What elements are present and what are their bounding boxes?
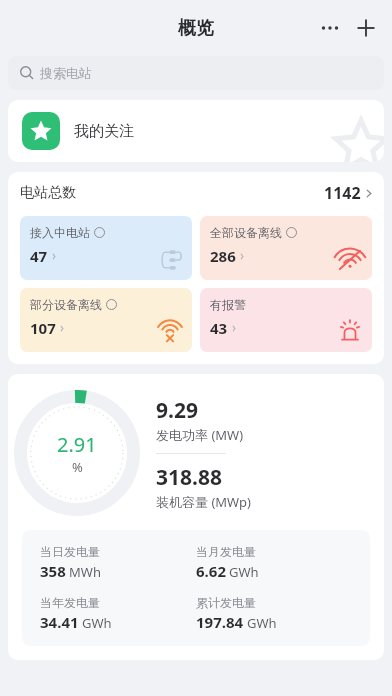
staticText: 发电功率 (MW) [156,426,244,444]
button[interactable]: More options [312,10,348,46]
staticText: % [72,458,83,476]
button[interactable]: 搜索电站 [8,56,384,90]
button[interactable]: 全部设备离线 [200,216,372,280]
button[interactable]: 我的关注 [8,100,384,162]
staticText: 有报警 [210,297,246,312]
staticText: 107 [30,318,56,338]
staticText: 43 [210,318,228,338]
button[interactable]: Add [348,10,384,46]
staticText: 2.91 [57,431,97,458]
staticText: 搜索电站 [40,65,92,81]
button[interactable]: 部分设备离线 [20,288,192,352]
staticText: 6.62 [196,561,226,581]
staticText: GWh [82,614,112,632]
staticText: 9.29 [156,396,198,425]
button[interactable]: 电站总数 [20,172,372,214]
staticText: 34.41 [40,612,79,632]
staticText: 全部设备离线 [210,225,282,240]
staticText: 318.88 [156,463,222,492]
staticText: 47 [30,246,48,266]
staticText: 286 [210,246,236,266]
staticText: 197.84 [196,612,244,632]
staticText: 358 [40,561,66,581]
staticText: 部分设备离线 [30,297,102,312]
staticText: GWh [247,614,277,632]
button[interactable]: 接入中电站 [20,216,192,280]
staticText: 累计发电量 [196,595,256,610]
staticText: MWh [69,563,101,581]
staticText: GWh [229,563,259,581]
staticText: 概览 [178,17,214,40]
staticText: 1142 [324,182,361,204]
staticText: 装机容量 (MWp) [156,493,251,511]
button[interactable]: 有报警 [200,288,372,352]
staticText: 当年发电量 [40,595,100,610]
staticText: 电站总数 [20,184,76,202]
staticText: 接入中电站 [30,225,90,240]
staticText: 当月发电量 [196,544,256,559]
staticText: 当日发电量 [40,544,100,559]
staticText: 我的关注 [74,122,134,141]
